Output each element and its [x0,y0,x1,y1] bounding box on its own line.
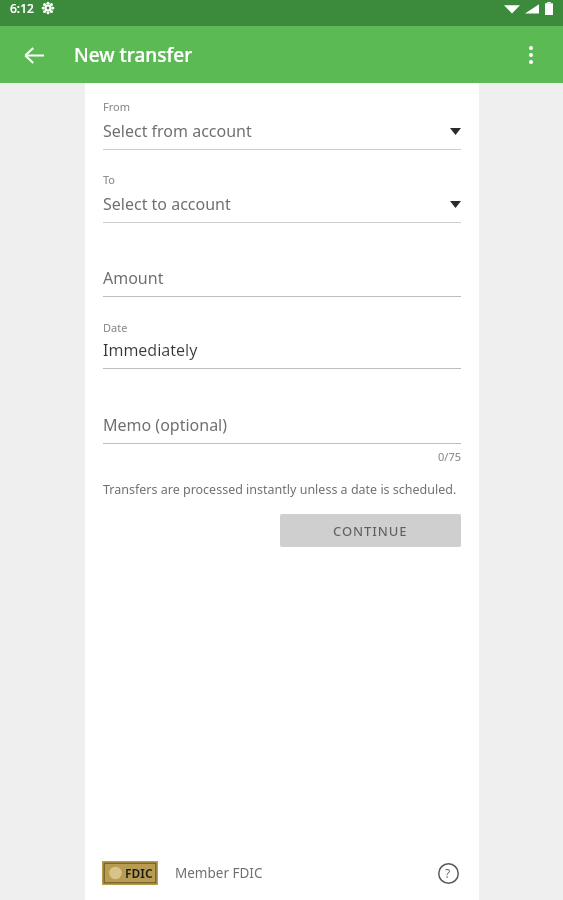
staticText: Select to account [103,193,231,215]
staticText: Immediately [103,339,198,361]
button[interactable]: Immediately [103,339,461,369]
button[interactable]: Back [12,33,56,77]
staticText: FDIC [125,865,153,881]
staticText: CONTINUE [333,522,408,540]
staticText: ? [445,865,451,881]
button[interactable]: Select to account [103,193,461,223]
button[interactable]: Help [431,856,465,890]
button[interactable]: Memo (optional) [103,414,461,444]
button[interactable]: More options [509,33,553,77]
staticText: Amount [103,267,164,289]
staticText: Select from account [103,120,252,142]
staticText: To [103,172,116,187]
staticText: Date [103,320,128,335]
staticText: 0/75 [103,449,461,464]
button[interactable]: CONTINUE [280,514,461,547]
staticText: From [103,99,130,114]
staticText: 6:12 [10,0,34,16]
button[interactable]: Amount [103,267,461,297]
staticText: New transfer [74,42,193,68]
staticText: Transfers are processed instantly unless… [103,481,457,498]
staticText: Memo (optional) [103,414,228,436]
button[interactable]: Select from account [103,120,461,150]
staticText: Member FDIC [175,864,263,882]
